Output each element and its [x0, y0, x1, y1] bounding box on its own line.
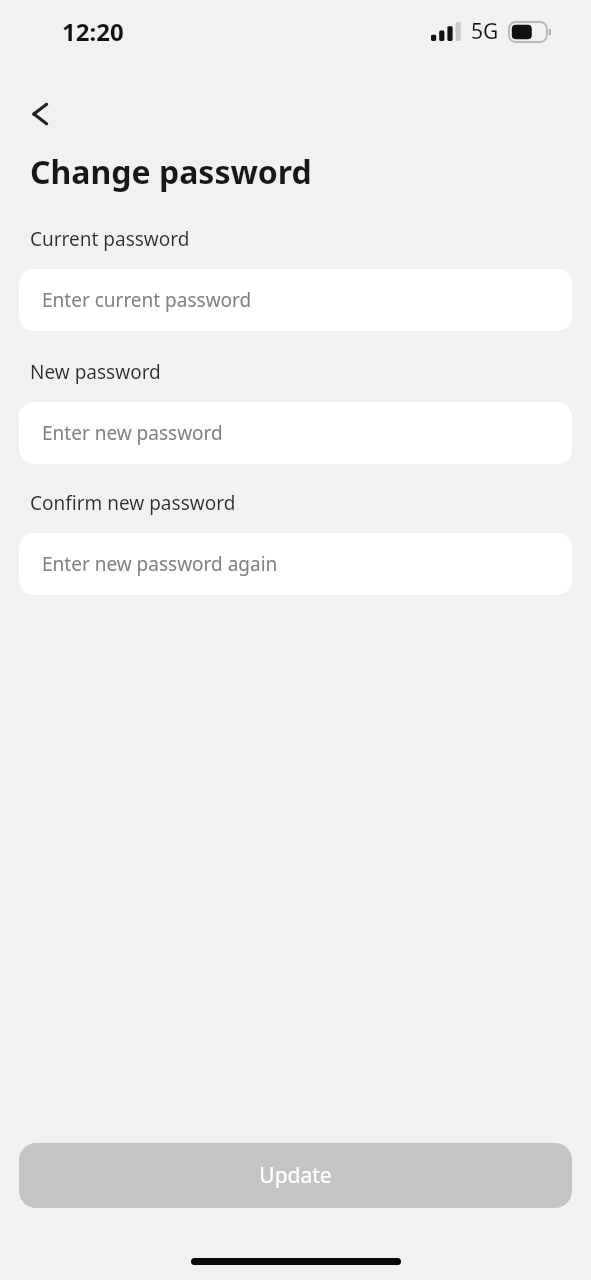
staticText: Update [259, 1161, 332, 1190]
button[interactable]: Enter current password [19, 269, 572, 331]
staticText: Enter current password [42, 287, 252, 313]
staticText: 12:20 [62, 15, 124, 48]
staticText: Current password [30, 226, 190, 252]
button[interactable]: Update [19, 1143, 572, 1208]
staticText: Enter new password [42, 420, 223, 446]
button[interactable]: Enter new password again [19, 533, 572, 595]
staticText: Enter new password again [42, 551, 278, 577]
button[interactable]: Back [14, 88, 66, 140]
staticText: 5G [471, 17, 499, 46]
staticText: New password [30, 359, 161, 385]
staticText: Change password [30, 150, 312, 194]
button[interactable]: Enter new password [19, 402, 572, 464]
staticText: Confirm new password [30, 490, 236, 516]
